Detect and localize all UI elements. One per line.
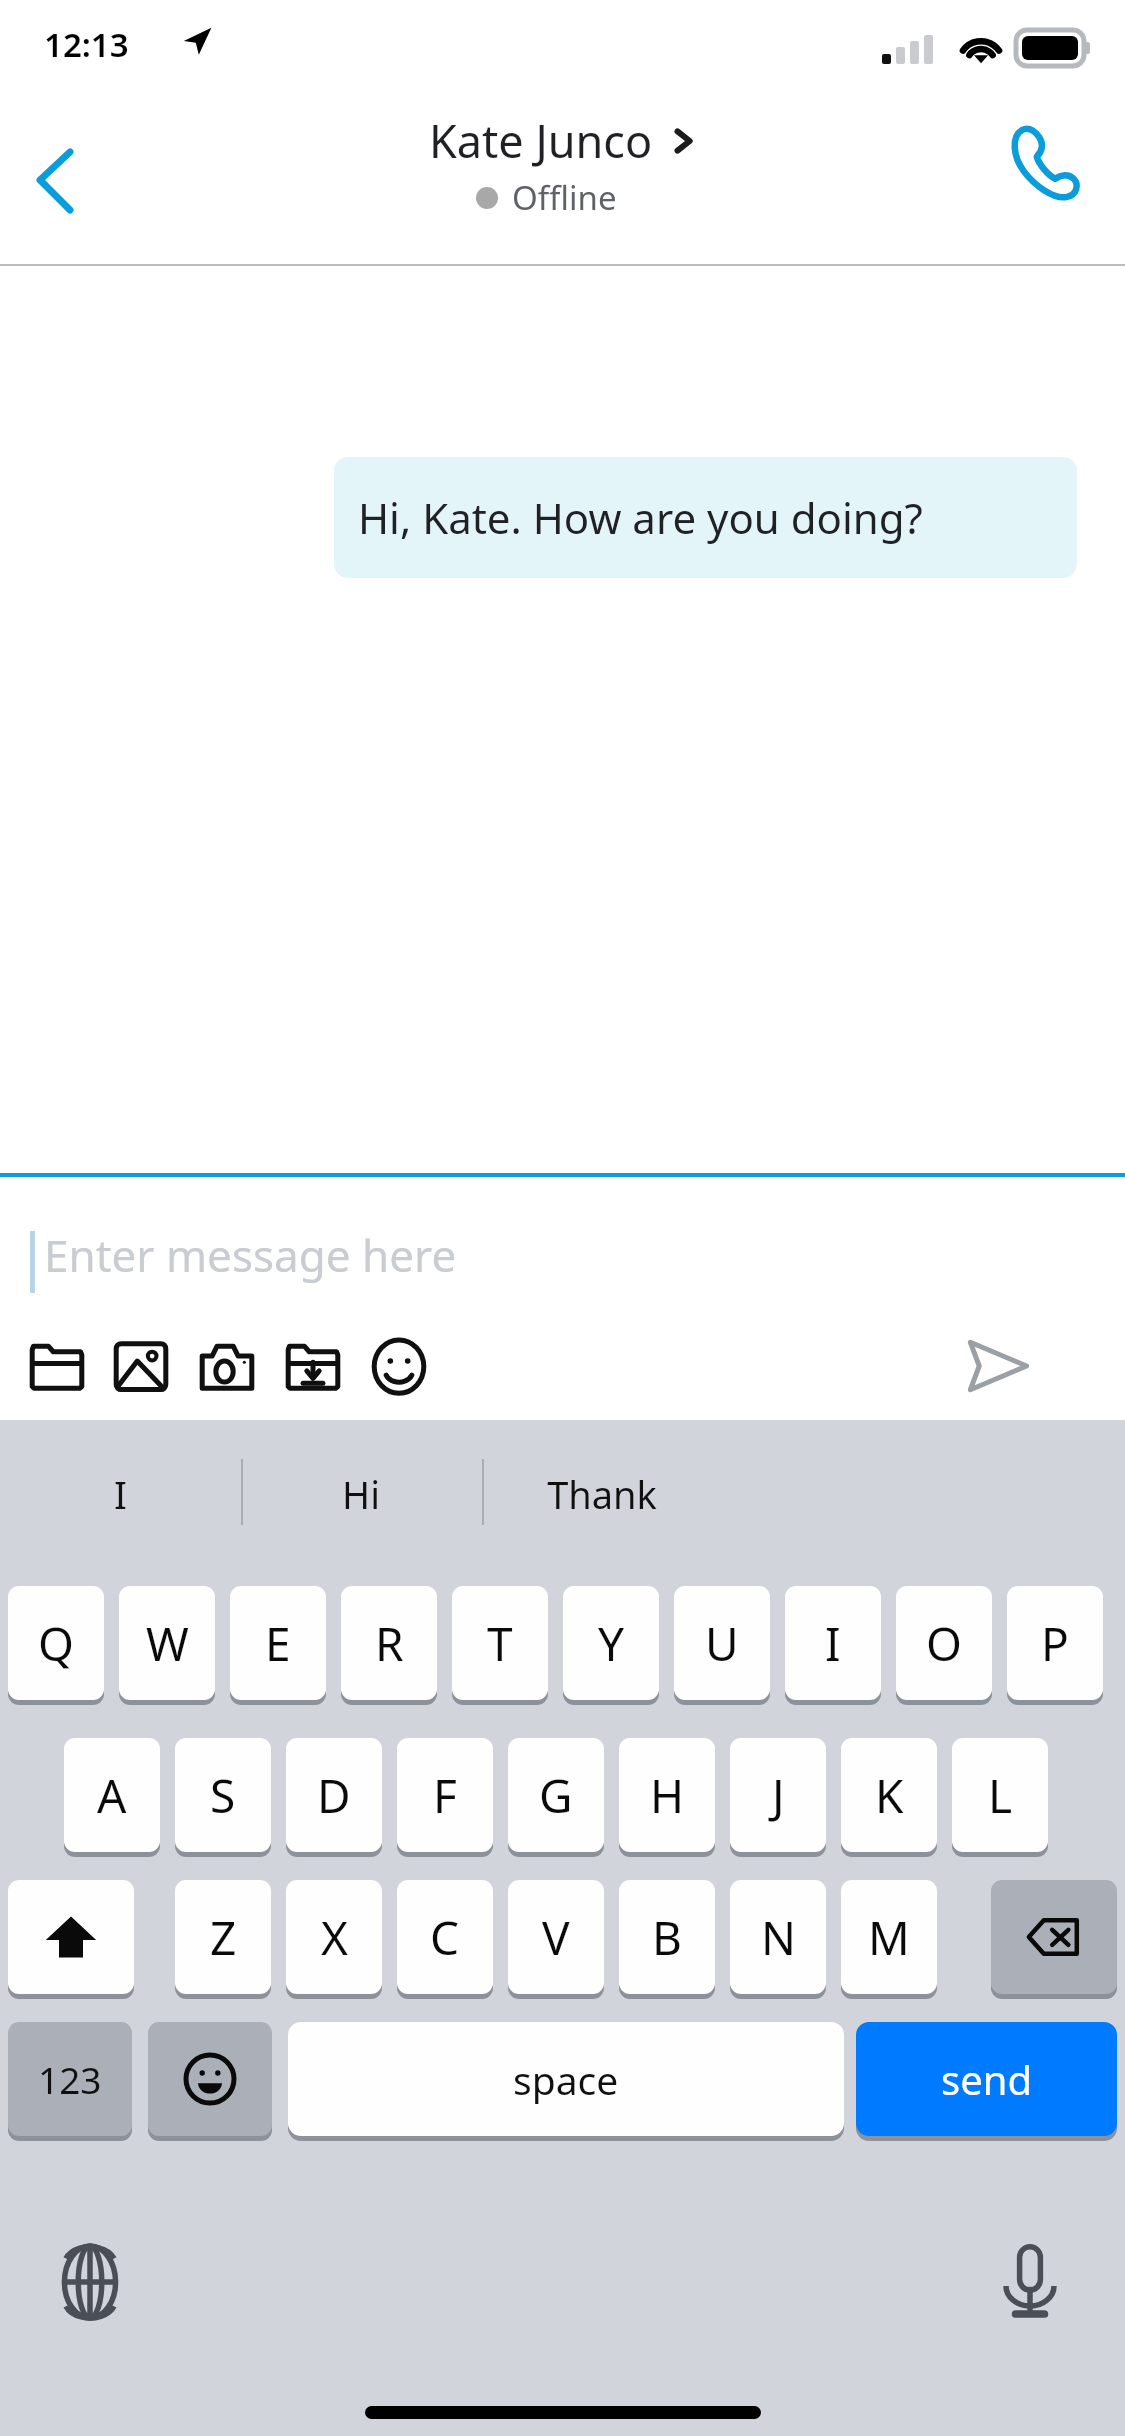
button[interactable]: H <box>619 1738 715 1852</box>
staticText: Hi, Kate. How are you doing? <box>358 489 923 546</box>
staticText: R <box>375 1612 404 1675</box>
button[interactable]: Q <box>8 1586 104 1700</box>
button[interactable]: I <box>2 1438 238 1550</box>
button[interactable]: M <box>841 1880 937 1994</box>
button[interactable]: L <box>952 1738 1048 1852</box>
staticText: W <box>146 1612 189 1675</box>
button[interactable]: F <box>397 1738 493 1852</box>
button[interactable]: Backspace <box>991 1880 1117 1994</box>
staticText: G <box>539 1764 573 1827</box>
button[interactable]: Z <box>175 1880 271 1994</box>
button[interactable]: Numbers <box>8 2022 132 2136</box>
button[interactable]: K <box>841 1738 937 1852</box>
button[interactable]: Thank <box>484 1438 720 1550</box>
button[interactable]: T <box>452 1586 548 1700</box>
staticText: D <box>317 1764 351 1827</box>
staticText: E <box>265 1612 291 1675</box>
staticText: K <box>875 1764 904 1827</box>
button[interactable]: G <box>508 1738 604 1852</box>
staticText: I <box>114 1468 127 1520</box>
staticText: 123 <box>38 2054 102 2104</box>
button[interactable]: Voice input <box>990 2242 1070 2322</box>
button[interactable]: Change keyboard <box>50 2242 130 2322</box>
staticText: H <box>650 1764 685 1827</box>
staticText: A <box>97 1764 127 1827</box>
button[interactable]: B <box>619 1880 715 1994</box>
button[interactable]: Camera <box>196 1335 258 1397</box>
staticText: Offline <box>512 175 617 220</box>
button[interactable]: Save file <box>282 1335 344 1397</box>
button[interactable]: Y <box>563 1586 659 1700</box>
staticText: S <box>210 1764 236 1827</box>
staticText: F <box>433 1764 457 1827</box>
button[interactable]: A <box>64 1738 160 1852</box>
button[interactable]: Hi <box>243 1438 479 1550</box>
button[interactable]: Send <box>960 1329 1034 1403</box>
staticText: X <box>321 1906 348 1969</box>
button[interactable]: W <box>119 1586 215 1700</box>
button[interactable]: E <box>230 1586 326 1700</box>
button[interactable]: Hi, Kate. How are you doing? <box>334 457 1077 578</box>
staticText: Q <box>38 1612 74 1675</box>
staticText: Kate Junco <box>429 110 653 171</box>
staticText: space <box>513 2053 619 2106</box>
button[interactable]: N <box>730 1880 826 1994</box>
button[interactable]: Shift <box>8 1880 134 1994</box>
button[interactable]: C <box>397 1880 493 1994</box>
staticText: P <box>1041 1612 1069 1675</box>
button[interactable]: Photo <box>110 1335 172 1397</box>
button[interactable]: J <box>730 1738 826 1852</box>
button[interactable]: D <box>286 1738 382 1852</box>
button[interactable]: U <box>674 1586 770 1700</box>
button[interactable]: space <box>288 2022 844 2136</box>
staticText: N <box>761 1906 796 1969</box>
staticText: V <box>542 1906 570 1969</box>
button[interactable]: V <box>508 1880 604 1994</box>
staticText: Y <box>598 1612 625 1675</box>
staticText: Thank <box>547 1468 657 1520</box>
staticText: L <box>988 1764 1013 1827</box>
staticText: 12:13 <box>44 22 129 67</box>
staticText: O <box>926 1612 962 1675</box>
staticText: C <box>430 1906 460 1969</box>
staticText: Z <box>210 1906 237 1969</box>
button[interactable]: Attach file <box>26 1335 88 1397</box>
button[interactable]: X <box>286 1880 382 1994</box>
button[interactable]: Back <box>10 130 110 230</box>
button[interactable]: R <box>341 1586 437 1700</box>
staticText: M <box>868 1906 910 1969</box>
staticText: Hi <box>342 1468 380 1520</box>
button[interactable]: Emoji <box>368 1335 430 1397</box>
button[interactable]: P <box>1007 1586 1103 1700</box>
button[interactable]: send <box>856 2022 1117 2136</box>
button[interactable]: Emoji keyboard <box>148 2022 272 2136</box>
staticText: U <box>705 1612 739 1675</box>
staticText: J <box>772 1764 785 1827</box>
button[interactable]: S <box>175 1738 271 1852</box>
staticText: send <box>941 2052 1033 2106</box>
staticText: I <box>825 1612 841 1675</box>
button[interactable]: Enter message here <box>44 1225 457 1285</box>
button[interactable]: O <box>896 1586 992 1700</box>
button[interactable]: Call <box>1000 118 1092 210</box>
staticText: B <box>652 1906 682 1969</box>
staticText: T <box>487 1612 513 1675</box>
button[interactable]: I <box>785 1586 881 1700</box>
